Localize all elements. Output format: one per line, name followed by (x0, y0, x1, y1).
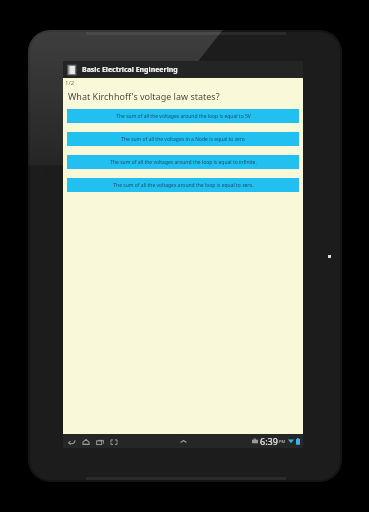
staticText: Basic Electrical Engineering (82, 65, 178, 75)
button[interactable]: Back (66, 435, 77, 448)
other: Expand (179, 437, 188, 446)
button[interactable]: Home (80, 435, 91, 448)
button[interactable]: The sum of all the voltages around the l… (67, 109, 299, 123)
button[interactable]: Screenshot (108, 435, 119, 448)
staticText: 6:39 (260, 435, 278, 447)
staticText: 1/2 (65, 79, 75, 87)
button[interactable]: Recent apps (94, 435, 105, 448)
staticText: The sum of all the voltages around the l… (116, 113, 251, 120)
staticText: The sum of all the voltages in a Node is… (121, 136, 245, 143)
staticText: What Kirchhoff's voltage law states? (68, 90, 220, 102)
button[interactable]: The sum of all the voltages around the l… (67, 178, 299, 192)
button[interactable]: The sum of all the voltages around the l… (67, 155, 299, 169)
staticText: PM (279, 439, 286, 444)
staticText: The sum of all the voltages around the l… (113, 182, 254, 189)
button[interactable]: The sum of all the voltages in a Node is… (67, 132, 299, 146)
staticText: The sum of all the voltages around the l… (110, 159, 257, 166)
